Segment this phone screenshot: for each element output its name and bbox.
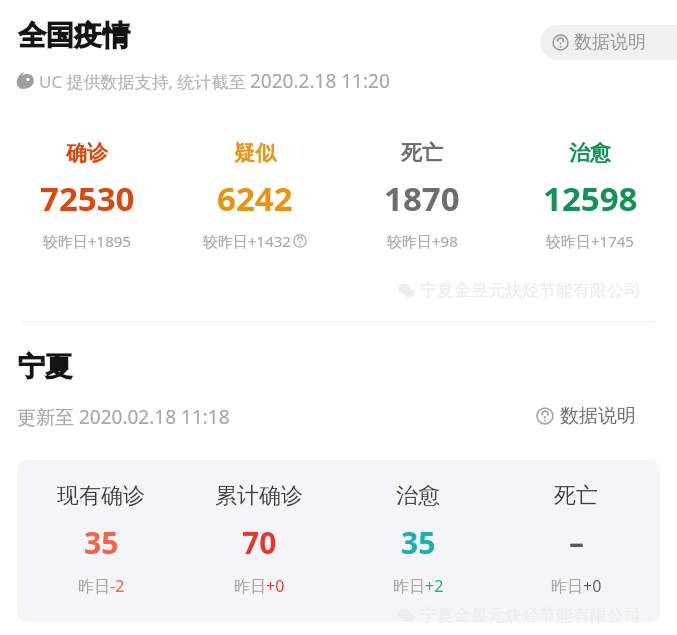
staticText: 昨日+0 <box>551 575 602 597</box>
button[interactable]: 死亡 <box>342 140 502 251</box>
button[interactable]: 治愈 <box>510 140 670 251</box>
staticText: 1870 <box>384 176 460 221</box>
staticText: 12598 <box>543 176 638 221</box>
staticText: 35 <box>401 522 436 563</box>
button[interactable]: 现有确诊 <box>17 460 660 622</box>
staticText: 宁夏金昱元炔烃节能有限公司 <box>420 605 641 626</box>
staticText: 死亡 <box>401 140 443 166</box>
staticText: 全国疫情 <box>18 18 130 53</box>
staticText: 6242 <box>217 176 293 221</box>
staticText: 累计确诊 <box>215 482 303 510</box>
staticText: 数据说明 <box>574 31 646 54</box>
staticText: UC 提供数据支持, 统计截至 <box>39 70 250 93</box>
staticText: 70 <box>242 522 277 563</box>
staticText: 数据说明 <box>560 404 636 428</box>
staticText: 较昨日+1745 <box>546 231 634 251</box>
staticText: 宁夏金昱元炔烃节能有限公司 <box>420 280 641 301</box>
staticText: 较昨日+1432 <box>203 231 291 251</box>
button[interactable]: 数据说明 <box>536 404 636 428</box>
staticText: 现有确诊 <box>57 482 145 510</box>
button[interactable]: 数据说明 <box>540 25 677 60</box>
staticText: 宁夏 <box>18 350 72 384</box>
staticText: 2020.2.18 11:20 <box>250 68 390 94</box>
staticText: 治愈 <box>396 482 440 510</box>
staticText: 疑似 <box>234 140 276 166</box>
staticText: 死亡 <box>554 482 598 510</box>
staticText: – <box>569 522 584 563</box>
button[interactable]: 确诊 <box>7 140 167 251</box>
staticText: 昨日+0 <box>234 575 285 597</box>
staticText: 72530 <box>40 176 135 221</box>
button[interactable]: 疑似 <box>175 140 335 251</box>
staticText: 昨日-2 <box>78 575 125 597</box>
staticText: 较昨日+1895 <box>43 231 131 251</box>
staticText: 35 <box>84 522 119 563</box>
staticText: 更新至 2020.02.18 11:18 <box>17 404 230 430</box>
staticText: 较昨日+98 <box>387 231 458 251</box>
staticText: 昨日+2 <box>393 575 444 597</box>
staticText: 治愈 <box>569 140 611 166</box>
staticText: 确诊 <box>66 140 108 166</box>
